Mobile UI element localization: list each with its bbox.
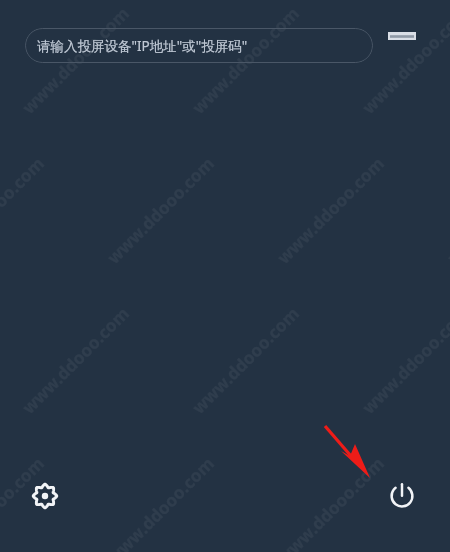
button[interactable]: 请输入投屏设备"IP地址"或"投屏码" — [25, 28, 373, 63]
staticText: www.ddooo.com — [357, 2, 450, 119]
staticText: www.ddooo.com — [0, 452, 49, 552]
staticText: 请输入投屏设备"IP地址"或"投屏码" — [37, 37, 248, 55]
button[interactable]: Minimize — [382, 22, 422, 50]
button[interactable]: Power — [383, 477, 421, 515]
staticText: www.ddooo.com — [272, 452, 389, 552]
staticText: www.ddooo.com — [17, 2, 134, 119]
staticText: www.ddooo.com — [187, 2, 304, 119]
button[interactable]: Settings — [26, 477, 64, 515]
